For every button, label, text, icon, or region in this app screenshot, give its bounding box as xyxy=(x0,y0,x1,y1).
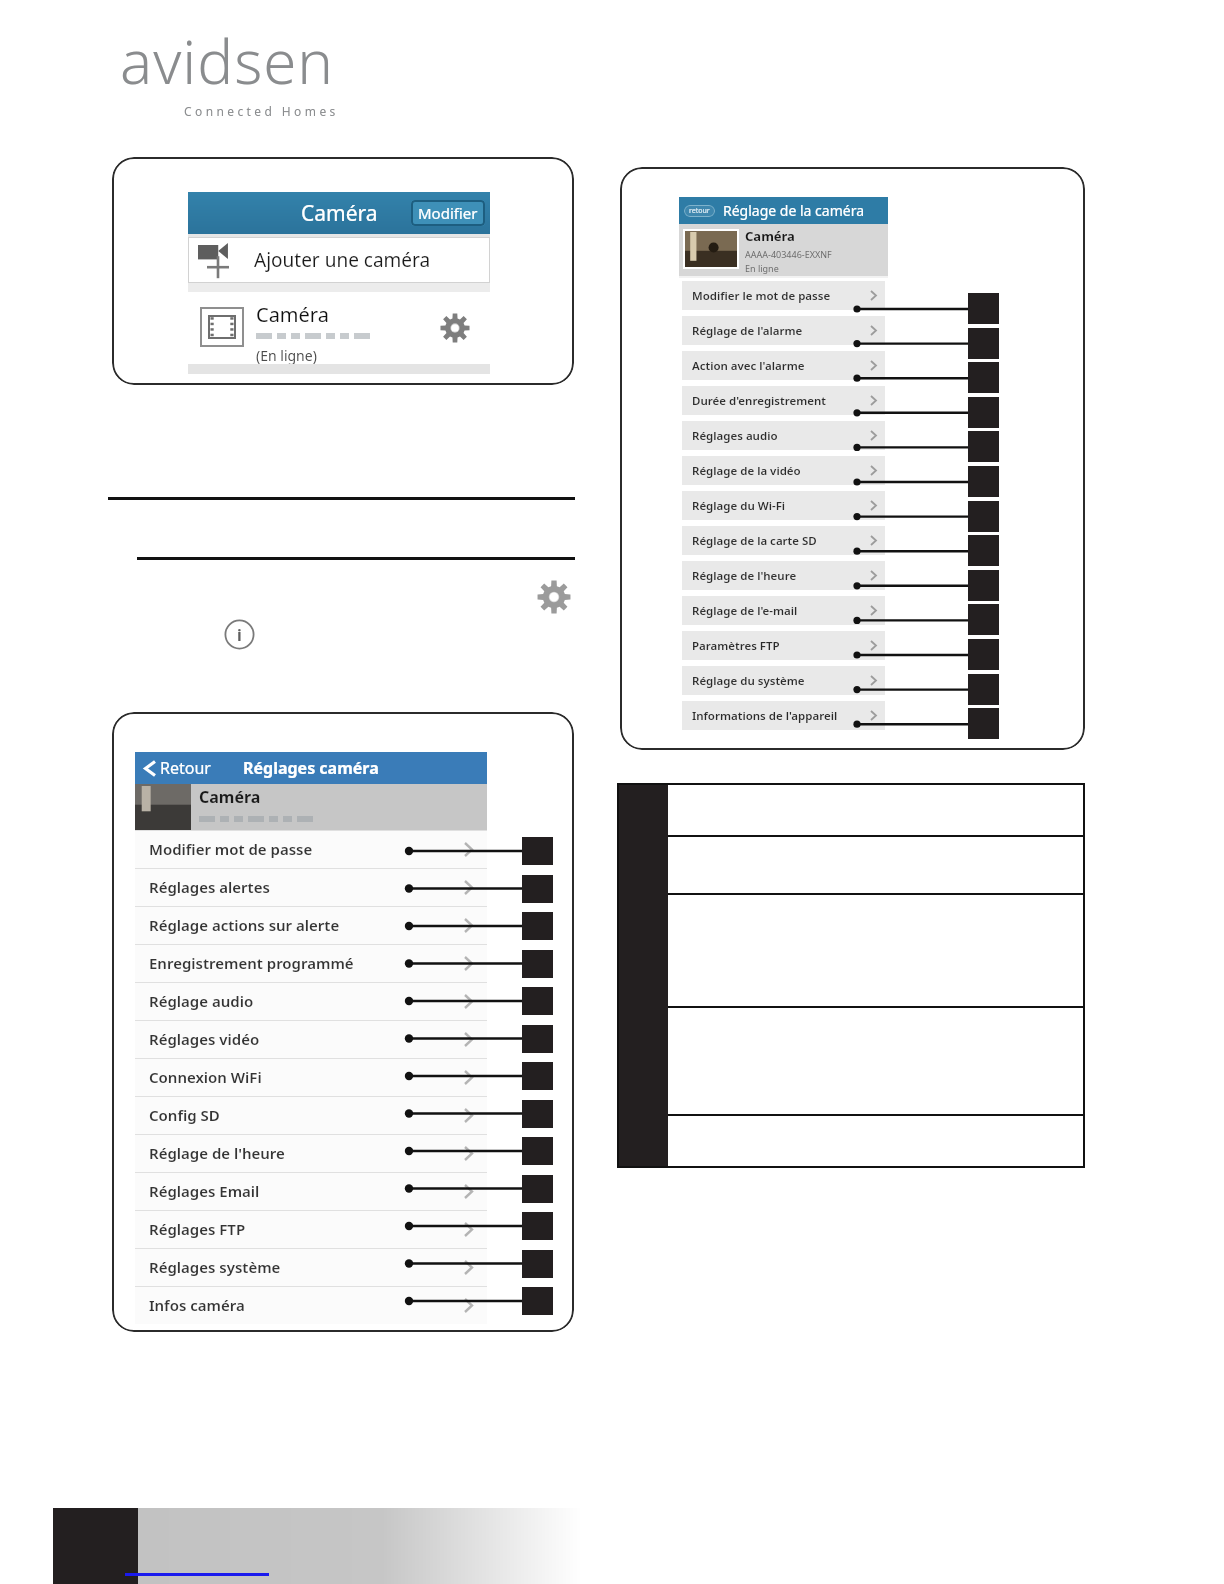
button[interactable]: Caméra xyxy=(188,292,490,364)
staticText: Modifier mot de passe xyxy=(149,839,313,859)
button[interactable]: Réglage de l'heure xyxy=(682,558,885,593)
staticText: Caméra xyxy=(745,227,795,245)
staticText: Réglages audio xyxy=(692,428,778,444)
button[interactable]: Connexion WiFi xyxy=(135,1058,487,1096)
button[interactable]: Réglage du système xyxy=(682,663,885,698)
button[interactable]: Retour xyxy=(135,752,487,784)
button[interactable]: Réglage du Wi-Fi xyxy=(682,488,885,523)
staticText: Enregistrement programmé xyxy=(149,953,354,973)
staticText: Réglages FTP xyxy=(149,1219,246,1239)
staticText: avidsen xyxy=(120,20,335,102)
staticText: Réglages caméra xyxy=(243,757,379,779)
staticText: i xyxy=(237,624,242,646)
staticText: Réglages alertes xyxy=(149,877,270,897)
button[interactable]: retour xyxy=(679,197,888,224)
staticText: Durée d'enregistrement xyxy=(692,393,826,409)
button[interactable]: Réglage de la vidéo xyxy=(682,453,885,488)
button[interactable]: Réglage de la carte SD xyxy=(682,523,885,558)
button[interactable]: Réglages système xyxy=(135,1248,487,1286)
button[interactable]: Réglage de l'heure xyxy=(135,1134,487,1172)
button[interactable]: Réglages FTP xyxy=(135,1210,487,1248)
staticText: (En ligne) xyxy=(256,346,317,365)
staticText: Paramètres FTP xyxy=(692,638,780,654)
button[interactable]: Réglage de l'alarme xyxy=(682,313,885,348)
staticText: Réglages système xyxy=(149,1257,281,1277)
button[interactable]: Réglage actions sur alerte xyxy=(135,906,487,944)
button[interactable]: Paramètres caméra xyxy=(440,313,470,343)
button[interactable]: Modifier mot de passe xyxy=(135,830,487,868)
button[interactable]: Informations xyxy=(224,619,255,650)
staticText: En ligne xyxy=(745,262,779,274)
button[interactable]: Ajouter une caméra xyxy=(188,237,490,283)
button[interactable]: Paramètres FTP xyxy=(682,628,885,663)
staticText: Config SD xyxy=(149,1105,220,1125)
button[interactable]: Caméra xyxy=(188,192,490,234)
button[interactable]: Réglage audio xyxy=(135,982,487,1020)
button[interactable]: Infos caméra xyxy=(135,1286,487,1324)
staticText: Réglage du Wi-Fi xyxy=(692,498,786,514)
button[interactable]: retour xyxy=(689,206,710,216)
button[interactable]: Modifier le mot de passe xyxy=(682,278,885,313)
button[interactable]: Réglages alertes xyxy=(135,868,487,906)
button[interactable]: Réglages Email xyxy=(135,1172,487,1210)
staticText: Réglage de l'heure xyxy=(149,1143,285,1163)
staticText: Réglage de la caméra xyxy=(723,201,864,220)
button[interactable]: Action avec l'alarme xyxy=(682,348,885,383)
staticText: Caméra xyxy=(256,301,329,328)
staticText: Réglage de l'alarme xyxy=(692,323,803,339)
staticText: Réglage du système xyxy=(692,673,805,689)
staticText: Connected Homes xyxy=(184,103,339,119)
staticText: Informations de l'appareil xyxy=(692,708,838,724)
button[interactable]: Config SD xyxy=(135,1096,487,1134)
staticText: Retour xyxy=(160,757,211,779)
button[interactable]: Durée d'enregistrement xyxy=(682,383,885,418)
staticText: Réglage audio xyxy=(149,991,254,1011)
staticText: Caméra xyxy=(301,199,378,228)
button[interactable]: Réglages audio xyxy=(682,418,885,453)
staticText: Infos caméra xyxy=(149,1295,245,1315)
staticText: Action avec l'alarme xyxy=(692,358,805,374)
staticText: Réglage actions sur alerte xyxy=(149,915,340,935)
staticText: Réglages vidéo xyxy=(149,1029,260,1049)
button[interactable]: Modifier xyxy=(418,203,478,223)
staticText: Ajouter une caméra xyxy=(254,247,431,273)
staticText: Réglage de l'heure xyxy=(692,568,797,584)
staticText: Modifier xyxy=(418,203,478,223)
staticText: Réglage de l'e-mail xyxy=(692,603,798,619)
staticText: Caméra xyxy=(199,786,261,808)
staticText: Réglage de la vidéo xyxy=(692,463,801,479)
staticText: retour xyxy=(689,206,710,216)
staticText: AAAA-403446-EXXNF xyxy=(745,248,832,260)
button[interactable]: Réglages xyxy=(537,580,571,614)
button[interactable]: Enregistrement programmé xyxy=(135,944,487,982)
button[interactable]: Réglage de l'e-mail xyxy=(682,593,885,628)
staticText: Réglage de la carte SD xyxy=(692,533,817,549)
button[interactable]: Informations de l'appareil xyxy=(682,698,885,733)
button[interactable]: Réglages vidéo xyxy=(135,1020,487,1058)
staticText: Réglages Email xyxy=(149,1181,260,1201)
staticText: Connexion WiFi xyxy=(149,1067,262,1087)
staticText: Modifier le mot de passe xyxy=(692,288,831,304)
